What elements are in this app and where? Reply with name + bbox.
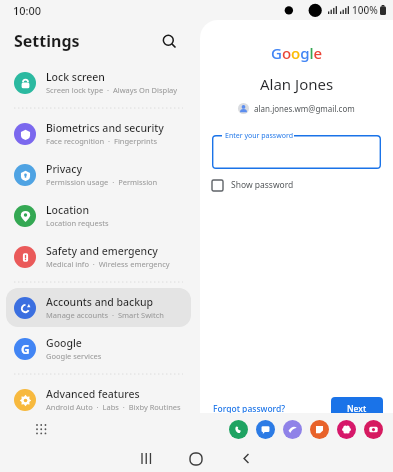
staticText: Alan Jones [260,74,334,94]
button[interactable]: phone [229,420,248,439]
staticText: Google [46,336,82,350]
staticText: Screen lock type · Always On Display [46,85,178,95]
staticText: Enter your password [225,131,293,141]
staticText: Settings [14,30,80,52]
button[interactable]: Lock screen [6,63,191,102]
staticText: Forgot password? [213,403,286,415]
button[interactable]: Privacy [6,155,191,194]
button[interactable]: G [6,329,191,368]
staticText: Location [46,203,90,217]
staticText: Accounts and backup [46,295,154,309]
staticText: alan.jones.wm@gmail.com [254,103,355,114]
staticText: Biometrics and security [46,121,164,135]
button[interactable]: Show password [212,179,381,191]
button[interactable]: Safety and emergency [6,237,191,276]
staticText: Manage accounts · Smart Switch [46,310,164,320]
staticText: Privacy [46,162,82,176]
button[interactable]: internet [283,420,302,439]
button[interactable]: Apps [29,417,53,441]
button[interactable]: Location [6,196,191,235]
staticText: 100% [352,3,378,17]
staticText: Google services [46,351,102,361]
staticText: Show password [231,179,294,191]
staticText: Advanced features [46,387,140,401]
button[interactable]: Accounts and backup [6,288,191,327]
button[interactable]: Biometrics and security [6,114,191,153]
staticText: Safety and emergency [46,244,158,258]
button[interactable]: Recents [129,445,163,472]
staticText: Next [347,403,367,415]
button[interactable]: Forgot password? [210,399,289,419]
button[interactable]: Back [229,445,263,472]
button[interactable]: Home [179,445,213,472]
button[interactable]: flower [337,420,356,439]
button[interactable]: Search [155,27,183,55]
staticText: Google [271,43,323,63]
staticText: Face recognition · Fingerprints [46,136,157,146]
staticText: Lock screen [46,70,105,84]
staticText: Medical info · Wireless emergency alerts [46,259,183,269]
button[interactable]: message [256,420,275,439]
staticText: Permission usage · Permission manager [46,177,183,187]
staticText: Location requests [46,218,109,228]
button[interactable]: notes [310,420,329,439]
staticText: Android Auto · Labs · Bixby Routines [46,402,181,412]
staticText: G [21,341,30,357]
staticText: 10:00 [13,3,42,18]
button[interactable]: Next [331,397,383,421]
button[interactable]: camera [364,420,383,439]
button[interactable]: Enter your password [212,135,381,169]
button[interactable]: Advanced features [6,380,191,419]
